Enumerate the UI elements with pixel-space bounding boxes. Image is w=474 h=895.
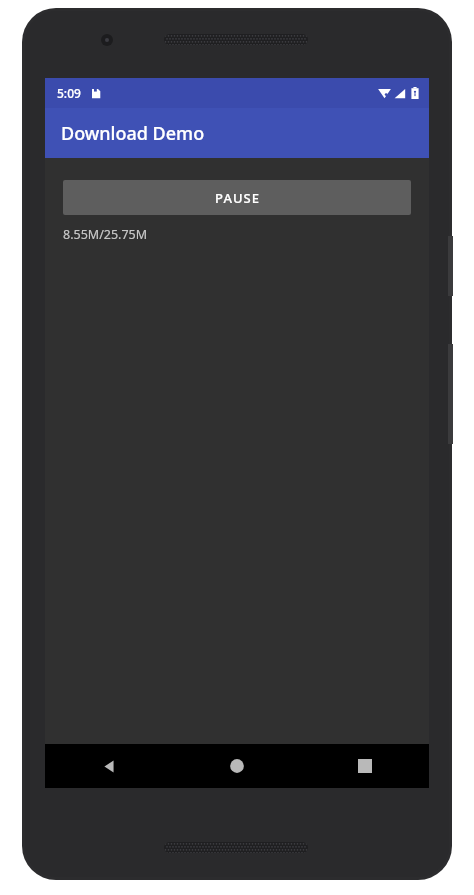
staticText: 5:09: [57, 85, 81, 101]
staticText: PAUSE: [215, 189, 260, 207]
button[interactable]: Recent apps: [301, 744, 429, 788]
staticText: Download Demo: [61, 121, 205, 146]
staticText: 8.55M/25.75M: [63, 226, 148, 243]
button[interactable]: Back: [45, 744, 173, 788]
button[interactable]: PAUSE: [63, 180, 411, 215]
button[interactable]: Home: [173, 744, 301, 788]
